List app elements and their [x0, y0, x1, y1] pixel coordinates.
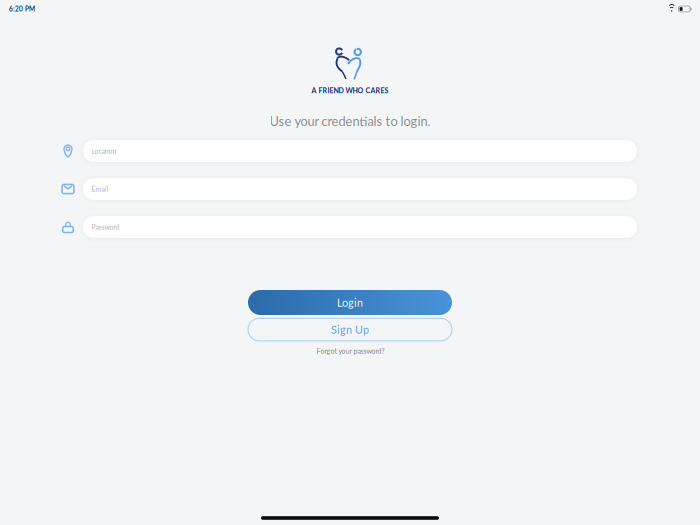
staticText: A FRIEND WHO CARES	[311, 86, 388, 95]
staticText: Location	[91, 147, 116, 155]
staticText: Sign Up	[331, 323, 369, 336]
staticText: Login	[337, 296, 363, 309]
button[interactable]: Email	[83, 178, 637, 200]
button[interactable]: Forgot your password?	[316, 347, 384, 355]
button[interactable]: Login	[248, 290, 452, 315]
staticText: Forgot your password?	[316, 347, 384, 355]
staticText: Email	[91, 185, 108, 193]
button[interactable]: Password	[83, 216, 637, 238]
button[interactable]: Location	[83, 140, 637, 162]
staticText: 6:20 PM	[9, 5, 35, 13]
staticText: Password	[91, 223, 119, 231]
staticText: Use your credentials to login.	[269, 113, 430, 129]
button[interactable]: Sign Up	[248, 318, 452, 341]
